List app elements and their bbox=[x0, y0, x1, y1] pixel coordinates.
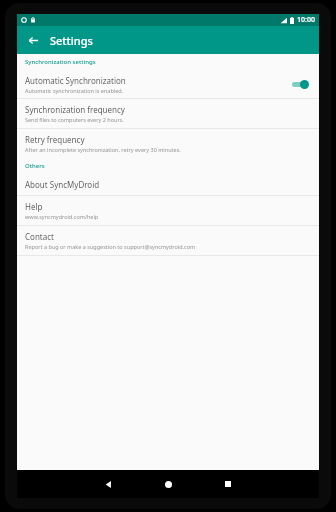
button[interactable]: Retry frequency bbox=[17, 129, 319, 158]
staticText: Send files to computers every 2 hours. bbox=[25, 116, 124, 123]
button[interactable]: Automatic Synchronization toggle bbox=[291, 78, 311, 90]
staticText: Settings bbox=[50, 33, 93, 48]
button[interactable]: Automatic Synchronization bbox=[17, 70, 319, 98]
button[interactable]: Help bbox=[17, 196, 319, 225]
button[interactable]: Synchronization frequency bbox=[17, 99, 319, 128]
staticText: Automatic synchronization is enabled. bbox=[25, 87, 124, 94]
staticText: Automatic Synchronization bbox=[25, 75, 126, 86]
staticText: Others bbox=[25, 162, 45, 170]
staticText: Report a bug or make a suggestion to sup… bbox=[25, 243, 196, 250]
staticText: Synchronization frequency bbox=[25, 104, 125, 115]
button[interactable]: About SyncMyDroid bbox=[17, 174, 319, 195]
button[interactable]: Home bbox=[151, 470, 185, 498]
button[interactable]: Recents bbox=[211, 470, 245, 498]
staticText: After an incomplete synchronization, ret… bbox=[25, 146, 181, 153]
button[interactable]: Back bbox=[23, 30, 43, 50]
staticText: Synchronization settings bbox=[25, 58, 96, 66]
staticText: 10:00 bbox=[297, 15, 315, 25]
button[interactable]: Back bbox=[91, 470, 125, 498]
staticText: www.syncmydroid.com/help bbox=[25, 213, 99, 220]
staticText: Help bbox=[25, 201, 43, 212]
staticText: About SyncMyDroid bbox=[25, 179, 100, 190]
staticText: Contact bbox=[25, 231, 54, 242]
staticText: Retry frequency bbox=[25, 134, 85, 145]
button[interactable]: Contact bbox=[17, 226, 319, 255]
